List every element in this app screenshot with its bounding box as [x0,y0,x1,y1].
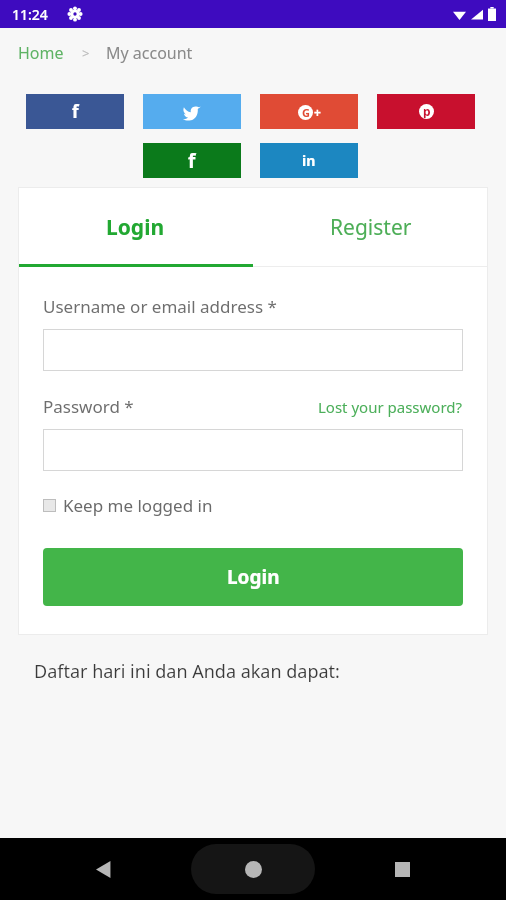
staticText: Username or email address * [43,295,277,318]
staticText: > [82,44,90,62]
staticText: Daftar hari ini dan Anda akan dapat: [34,659,506,684]
button[interactable]: Lost your password? [318,397,463,417]
staticText: in [302,151,316,170]
staticText: G [302,105,310,120]
staticText: p [423,104,431,118]
button[interactable] [43,429,463,471]
staticText: f [188,148,196,174]
button[interactable]: Twitter [143,94,241,129]
button[interactable]: Home [18,42,64,64]
button[interactable]: Keep me logged in [43,494,213,517]
button[interactable]: Google Plus [260,94,358,129]
button[interactable]: Home [191,844,315,894]
staticText: Register [330,213,412,242]
button[interactable]: Pinterest [377,94,475,129]
staticText: My account [106,42,193,64]
button[interactable]: Login [18,187,253,267]
button[interactable]: Register [253,187,488,267]
button[interactable] [43,329,463,371]
button[interactable]: Login [43,548,463,606]
button[interactable]: LinkedIn [260,143,358,178]
staticText: f [72,100,79,123]
staticText: 11:24 [12,5,48,24]
button[interactable]: Share on Facebook [143,143,241,178]
staticText: Password * [43,395,134,418]
staticText: Home [18,42,64,64]
staticText: + [314,104,321,120]
button[interactable]: Facebook [26,94,124,129]
button[interactable]: Recent apps [382,849,422,889]
staticText: Keep me logged in [63,494,213,517]
staticText: Lost your password? [318,397,463,417]
staticText: Login [106,213,165,242]
staticText: Login [227,564,280,590]
button[interactable]: Back [84,849,124,889]
